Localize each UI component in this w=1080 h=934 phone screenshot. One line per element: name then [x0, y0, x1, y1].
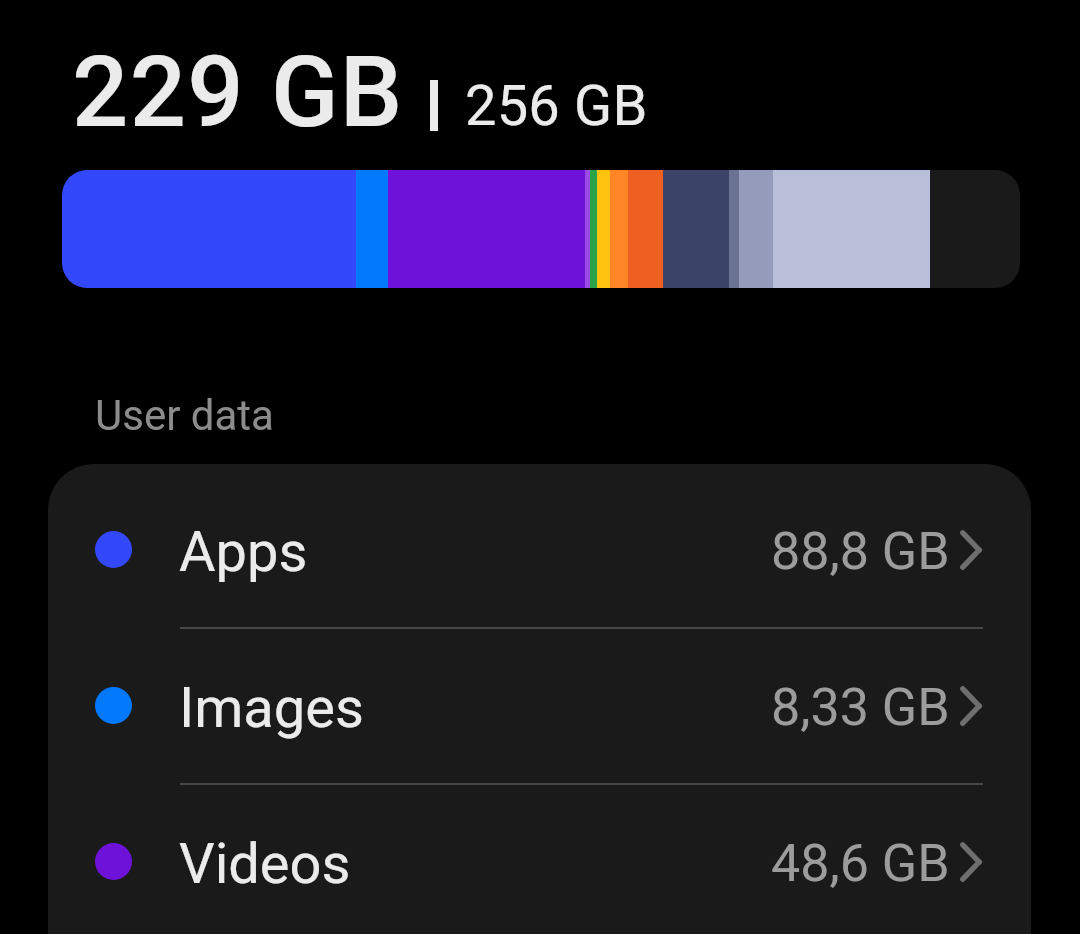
staticText: User data [95, 391, 274, 440]
staticText: Images [179, 675, 364, 741]
other: Open Videos details [960, 842, 982, 882]
other: Open Apps details [960, 530, 982, 570]
button[interactable]: Apps [48, 473, 1031, 627]
other: Open Images details [960, 686, 982, 726]
staticText: 229 GB [72, 34, 404, 150]
staticText: Apps [179, 519, 308, 585]
staticText: Videos [179, 831, 351, 897]
other: Storage usage breakdown [62, 170, 1020, 288]
staticText: 88,8 GB [771, 521, 950, 582]
staticText: 48,6 GB [771, 833, 950, 894]
button[interactable]: Images [48, 629, 1031, 783]
staticText: 256 GB [465, 73, 648, 139]
button[interactable]: Videos [48, 785, 1031, 934]
staticText: 8,33 GB [771, 677, 950, 738]
